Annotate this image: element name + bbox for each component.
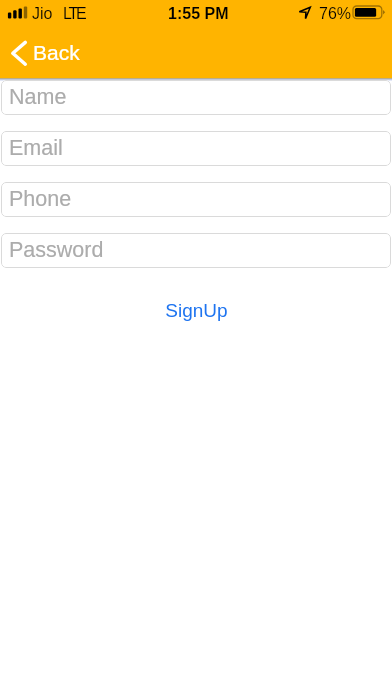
staticText: SignUp [165, 300, 228, 321]
staticText: 1:55 PM [168, 5, 229, 23]
staticText: LTE [63, 5, 85, 23]
button[interactable]: Email [1, 131, 391, 166]
button[interactable]: SignUp [151, 297, 242, 324]
staticText: Email [9, 136, 63, 160]
button[interactable]: Name [1, 80, 391, 115]
staticText: Password [9, 238, 104, 262]
staticText: Name [9, 85, 67, 109]
staticText: 76% [319, 5, 352, 23]
staticText: Back [33, 41, 80, 64]
staticText: Jio [32, 5, 53, 23]
button[interactable]: Password [1, 233, 391, 268]
other: Location [298, 5, 313, 20]
staticText: Phone [9, 187, 72, 211]
button[interactable]: Phone [1, 182, 391, 217]
other: Battery 76 percent [353, 6, 387, 20]
other: Signal strength [7, 5, 29, 19]
button[interactable]: Back [7, 36, 84, 69]
